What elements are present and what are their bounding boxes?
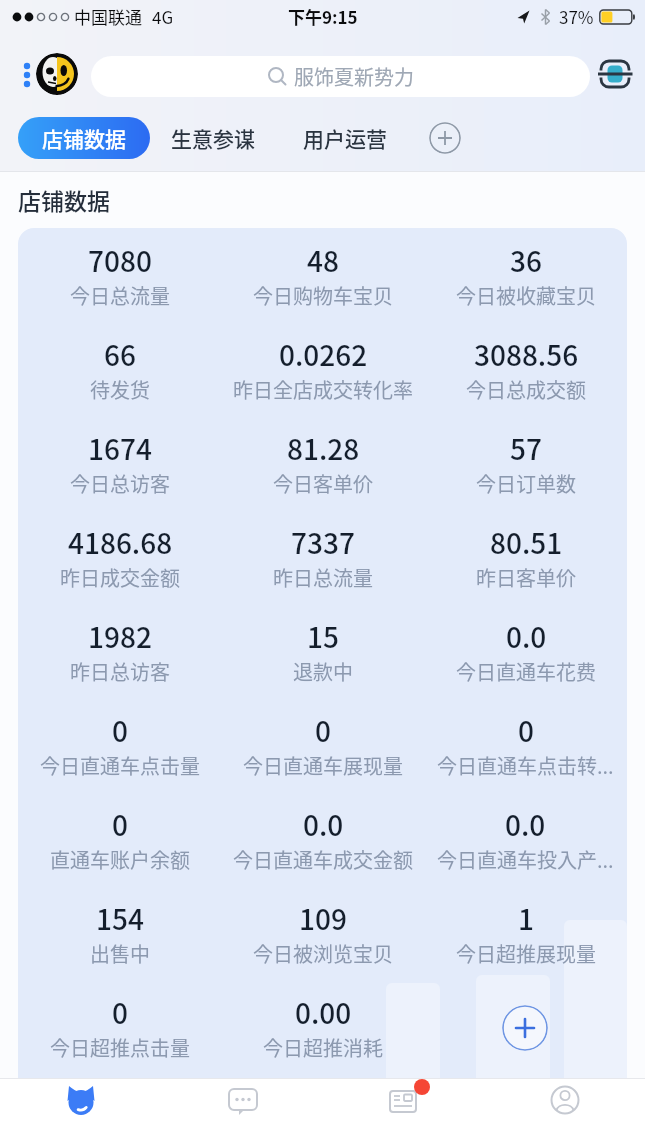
button[interactable]: 店铺数据 xyxy=(18,117,150,159)
staticText: 36 xyxy=(510,240,542,281)
staticText: 1982 xyxy=(88,616,152,657)
staticText: 今日被浏览宝贝 xyxy=(253,939,393,968)
staticText: 154 xyxy=(96,898,144,939)
staticText: 今日客单价 xyxy=(273,469,373,498)
button[interactable] xyxy=(0,1079,162,1121)
staticText: 4G xyxy=(152,4,174,29)
staticText: 15 xyxy=(307,616,339,657)
staticText: 57 xyxy=(510,428,542,469)
staticText: 0 xyxy=(112,804,128,845)
staticText: 今日直通车成交金额 xyxy=(233,845,413,874)
button[interactable]: 用户运营 xyxy=(298,117,392,159)
staticText: 今日超推消耗 xyxy=(263,1033,383,1062)
button[interactable] xyxy=(323,1079,484,1121)
staticText: 今日订单数 xyxy=(476,469,576,498)
staticText: 0.0262 xyxy=(279,334,368,375)
staticText: 4186.68 xyxy=(68,522,173,563)
staticText: 0 xyxy=(518,710,534,751)
staticText: 1 xyxy=(518,898,534,939)
staticText: 3088.56 xyxy=(474,334,579,375)
button[interactable] xyxy=(15,54,39,96)
staticText: 中国联通 xyxy=(74,4,142,29)
staticText: 用户运营 xyxy=(303,123,387,153)
staticText: 待发货 xyxy=(90,375,150,404)
staticText: 出售中 xyxy=(90,939,150,968)
staticText: 昨日总流量 xyxy=(273,563,373,592)
staticText: 今日购物车宝贝 xyxy=(253,281,393,310)
staticText: 退款中 xyxy=(293,657,353,686)
staticText: 66 xyxy=(104,334,136,375)
staticText: 昨日全店成交转化率 xyxy=(233,375,413,404)
staticText: 1674 xyxy=(88,428,152,469)
staticText: 0.0 xyxy=(505,804,546,845)
staticText: 今日超推点击量 xyxy=(50,1033,190,1062)
button[interactable] xyxy=(502,1005,548,1051)
staticText: 今日直通车点击转... xyxy=(437,751,614,780)
staticText: 服饰夏新势力 xyxy=(294,62,414,91)
staticText: 7337 xyxy=(291,522,355,563)
staticText: 昨日总访客 xyxy=(70,657,170,686)
staticText: 今日总访客 xyxy=(70,469,170,498)
staticText: 今日被收藏宝贝 xyxy=(456,281,596,310)
staticText: 7080 xyxy=(88,240,152,281)
button[interactable] xyxy=(598,58,638,94)
button[interactable]: 服饰夏新势力 xyxy=(91,56,590,97)
staticText: 今日直通车投入产... xyxy=(437,845,614,874)
staticText: 0 xyxy=(112,992,128,1033)
staticText: 今日直通车点击量 xyxy=(40,751,200,780)
button[interactable]: 生意参谋 xyxy=(166,117,260,159)
staticText: 48 xyxy=(307,240,339,281)
staticText: 今日直通车花费 xyxy=(456,657,596,686)
staticText: 下午9:15 xyxy=(288,4,358,29)
staticText: 37% xyxy=(559,4,594,29)
button[interactable] xyxy=(36,53,78,95)
staticText: 今日直通车展现量 xyxy=(243,751,403,780)
staticText: 109 xyxy=(299,898,347,939)
staticText: 直通车账户余额 xyxy=(50,845,190,874)
staticText: 昨日成交金额 xyxy=(60,563,180,592)
staticText: 0 xyxy=(112,710,128,751)
button[interactable] xyxy=(162,1079,323,1121)
button[interactable] xyxy=(484,1079,645,1121)
staticText: 店铺数据 xyxy=(42,123,126,153)
staticText: 0.00 xyxy=(295,992,352,1033)
staticText: 今日总流量 xyxy=(70,281,170,310)
staticText: 昨日客单价 xyxy=(476,563,576,592)
staticText: 81.28 xyxy=(287,428,360,469)
staticText: 0.0 xyxy=(303,804,344,845)
staticText: 0.0 xyxy=(506,616,547,657)
staticText: 0 xyxy=(315,710,331,751)
staticText: 生意参谋 xyxy=(171,123,255,153)
button[interactable] xyxy=(429,122,461,154)
staticText: 80.51 xyxy=(490,522,563,563)
staticText: 店铺数据 xyxy=(18,183,110,216)
staticText: 今日超推展现量 xyxy=(456,939,596,968)
staticText: 今日总成交额 xyxy=(466,375,586,404)
